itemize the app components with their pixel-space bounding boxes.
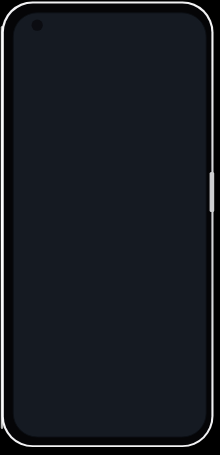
other: Phone device preview, screen blank [0,0,220,455]
